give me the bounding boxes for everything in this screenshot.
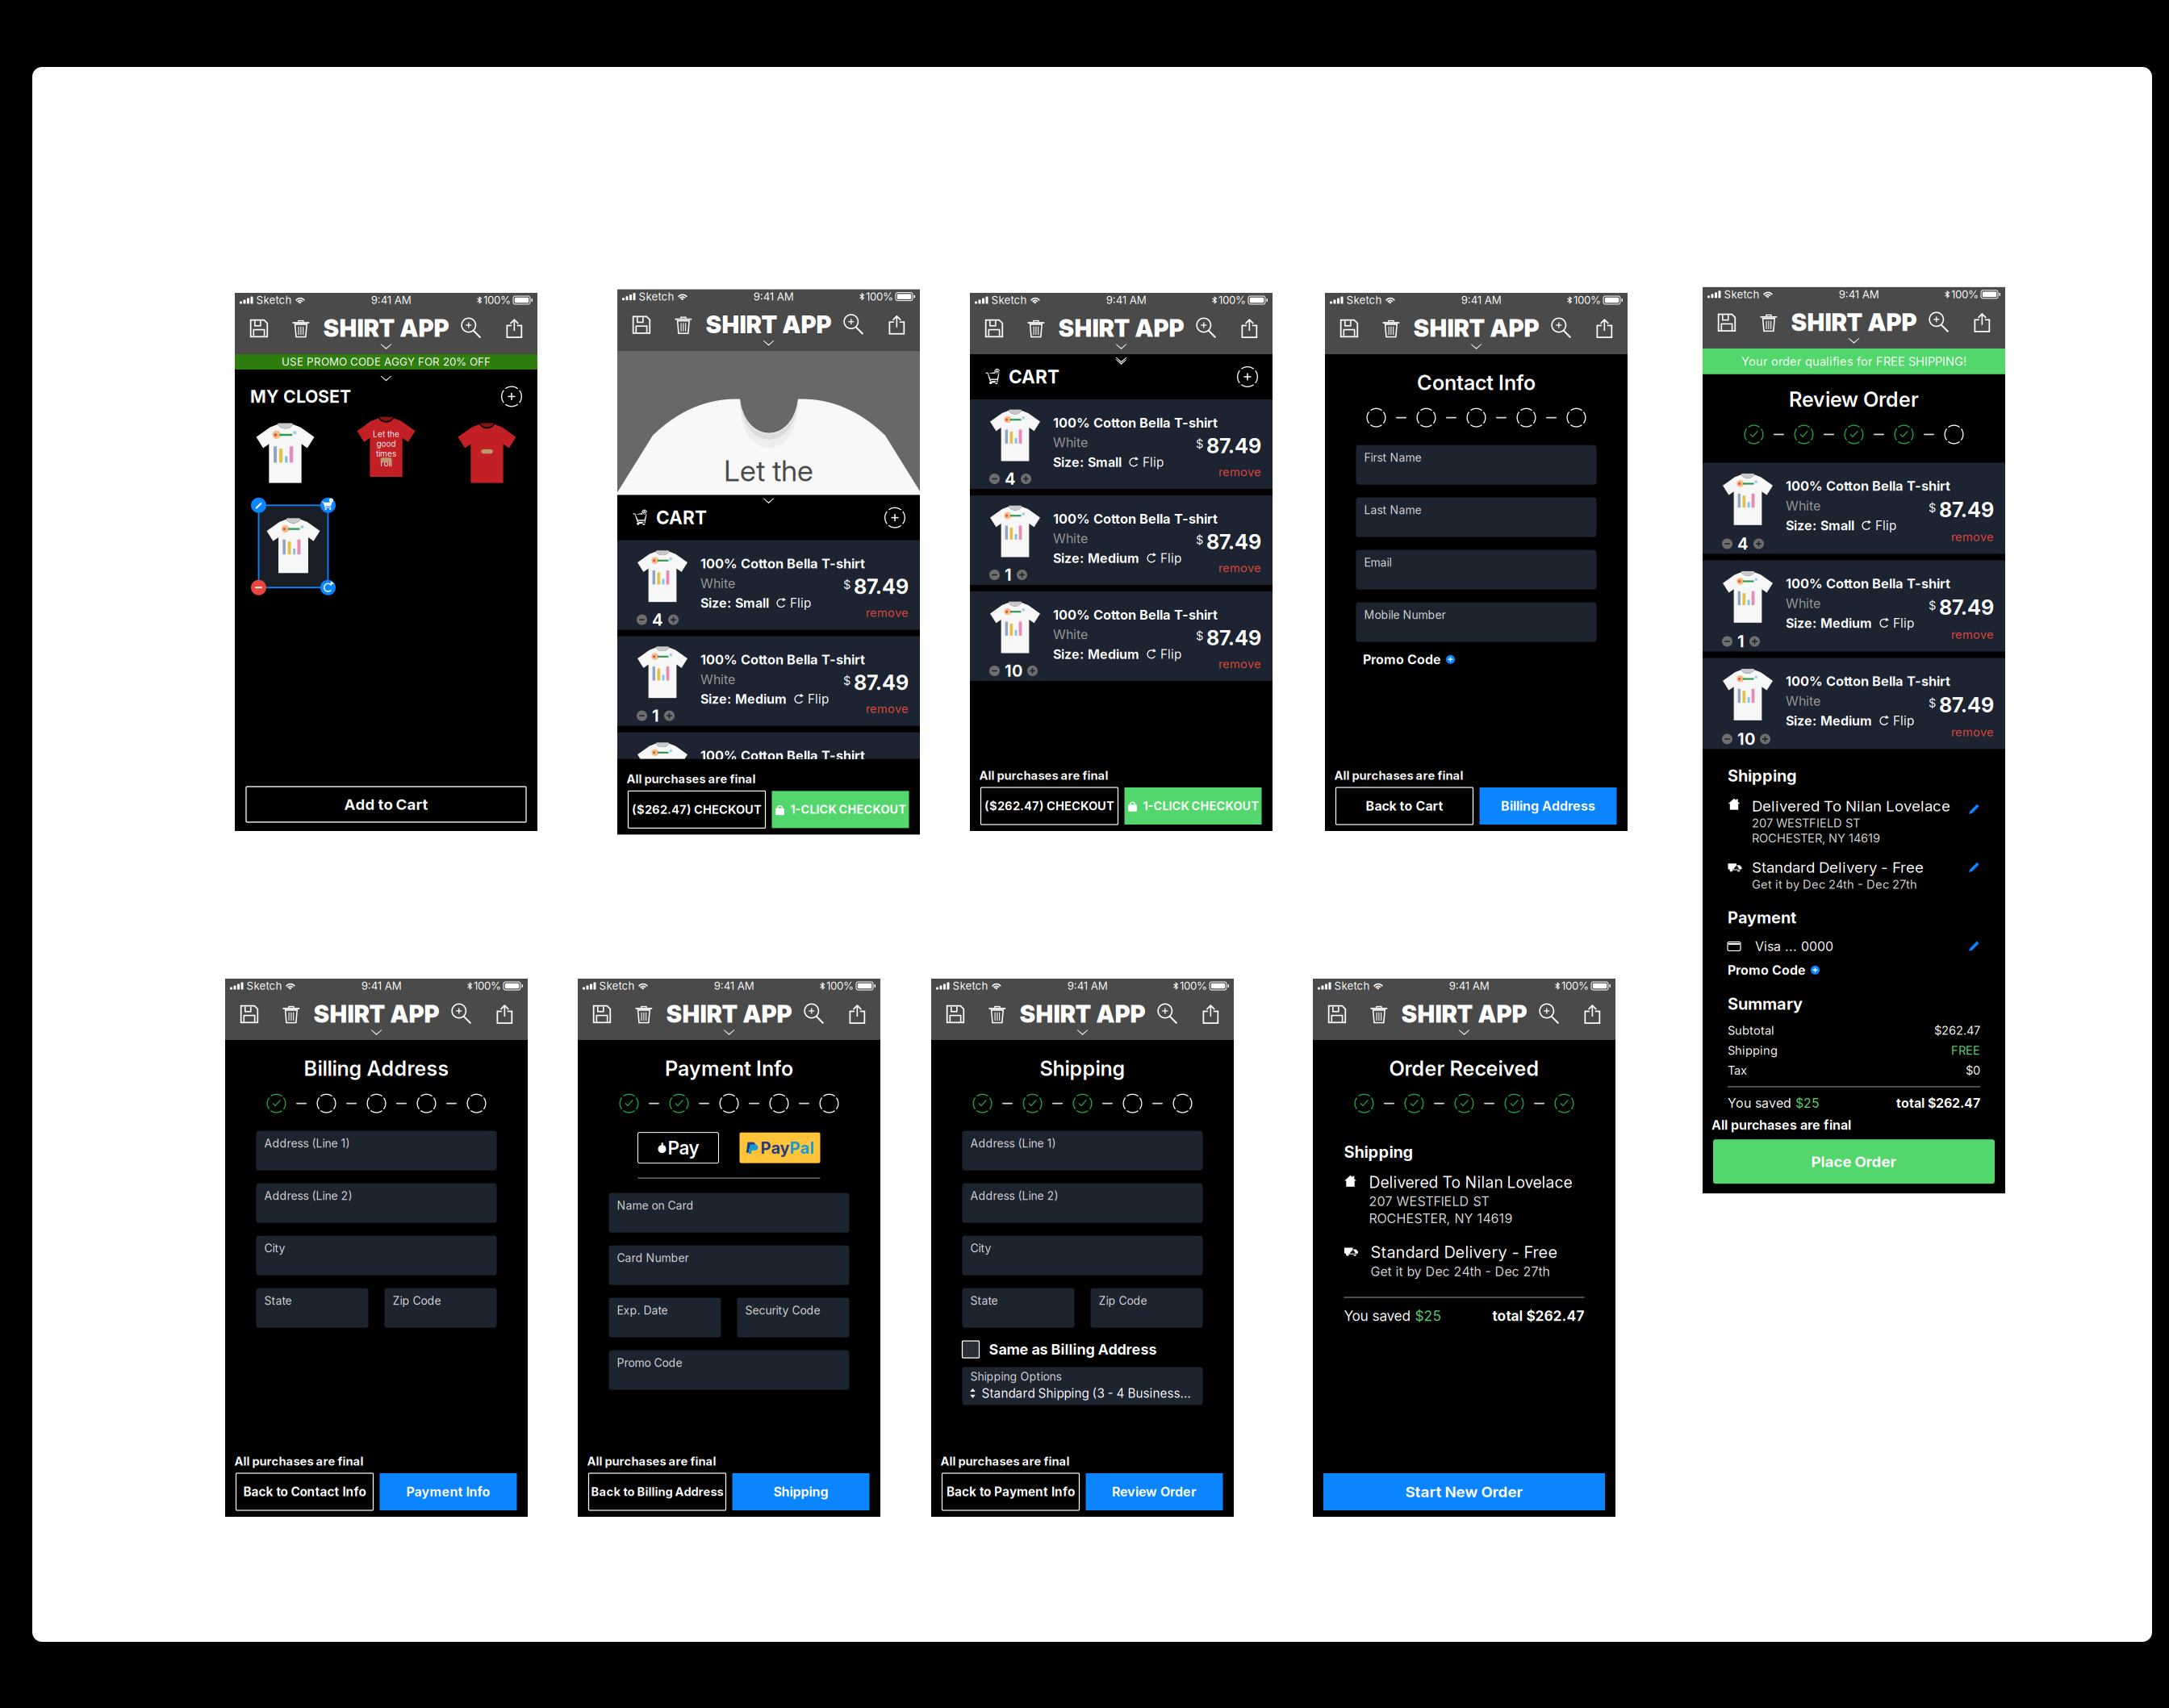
button[interactable]: Delete xyxy=(989,1004,1006,1024)
button[interactable]: Edit address xyxy=(1968,803,1980,815)
button[interactable]: Save xyxy=(1717,313,1736,332)
button[interactable]: 1-CLICK CHECKOUT xyxy=(1124,787,1262,825)
button[interactable]: Back to Billing Address xyxy=(589,1473,726,1510)
button[interactable]: Delete xyxy=(1760,313,1777,332)
button[interactable]: remove xyxy=(866,798,909,812)
button[interactable]: Place Order xyxy=(1713,1139,1995,1184)
button[interactable]: Increase xyxy=(664,710,675,721)
button[interactable]: Increase xyxy=(675,806,685,817)
button[interactable]: Promo Code xyxy=(1363,652,1455,667)
button[interactable]: Start New Order xyxy=(1323,1473,1605,1510)
button[interactable]: Decrease xyxy=(637,710,647,721)
button[interactable]: Share xyxy=(496,1004,513,1024)
button[interactable]: Promo Code xyxy=(1728,962,1820,978)
button[interactable]: Delete xyxy=(283,1004,300,1024)
staticText: Sketch xyxy=(599,979,635,992)
button[interactable]: Delete xyxy=(635,1004,652,1024)
button[interactable]: Share xyxy=(849,1004,866,1024)
button[interactable]: Edit shirt xyxy=(251,498,266,513)
button[interactable]: Back to Payment Info xyxy=(942,1473,1079,1510)
staticText: remove xyxy=(1218,465,1261,479)
button[interactable]: Save xyxy=(1339,319,1359,338)
button[interactable]: Shipping xyxy=(732,1473,869,1510)
button[interactable]: remove xyxy=(1218,561,1261,575)
button[interactable]: Back to Cart xyxy=(1336,787,1473,825)
button[interactable]: Billing Address xyxy=(1479,787,1617,825)
button[interactable]: Share xyxy=(1241,318,1258,339)
button[interactable]: Share xyxy=(1596,318,1613,339)
button[interactable]: Pay xyxy=(638,1133,719,1163)
button[interactable]: Save xyxy=(240,1004,259,1024)
button[interactable]: Decrease xyxy=(1722,636,1732,647)
button[interactable]: Delete xyxy=(1382,319,1400,338)
button[interactable]: Zoom xyxy=(844,315,865,335)
button[interactable]: Increase xyxy=(1021,474,1031,484)
button[interactable]: remove xyxy=(1218,465,1261,479)
button[interactable]: Payment Info xyxy=(380,1473,517,1510)
button[interactable]: Same as Billing Address xyxy=(962,1341,979,1358)
button[interactable]: Decrease xyxy=(989,666,1000,676)
button[interactable]: Decrease xyxy=(1722,734,1732,744)
button[interactable]: Share xyxy=(1584,1004,1601,1024)
button[interactable]: Decrease xyxy=(637,806,647,817)
staticText: Flip xyxy=(1143,455,1164,470)
button[interactable]: Save xyxy=(1327,1004,1347,1024)
button[interactable]: Increase xyxy=(1749,636,1760,647)
button[interactable]: 1-CLICK CHECKOUT xyxy=(772,791,909,828)
button[interactable]: Back to Contact Info xyxy=(236,1473,373,1510)
button[interactable]: Delete xyxy=(292,319,309,338)
button[interactable]: Increase xyxy=(668,614,679,625)
button[interactable]: Zoom xyxy=(452,1004,472,1024)
button[interactable]: Add shirt xyxy=(501,386,522,407)
button[interactable]: Delete shirt xyxy=(251,580,266,595)
button[interactable]: remove xyxy=(1218,657,1261,671)
button[interactable]: Share xyxy=(1202,1004,1219,1024)
button[interactable]: Add item xyxy=(884,507,905,528)
button[interactable]: remove xyxy=(1951,627,1994,642)
button[interactable]: Delete xyxy=(675,315,692,335)
button[interactable]: Increase xyxy=(1027,666,1038,676)
button[interactable]: Save xyxy=(984,319,1004,338)
button[interactable]: Review Order xyxy=(1086,1473,1223,1510)
button[interactable]: Share xyxy=(1973,312,1991,333)
button[interactable]: Save xyxy=(249,319,269,338)
button[interactable]: Edit delivery xyxy=(1968,862,1980,874)
button[interactable]: Share xyxy=(888,315,905,335)
button[interactable]: Decrease xyxy=(989,474,1000,484)
button[interactable]: remove xyxy=(1951,725,1994,739)
button[interactable]: Zoom xyxy=(1197,318,1217,339)
button[interactable]: remove xyxy=(866,702,909,716)
button[interactable]: Delete xyxy=(1370,1004,1387,1024)
button[interactable]: Zoom xyxy=(1158,1004,1178,1024)
button[interactable]: Save xyxy=(946,1004,965,1024)
button[interactable]: ($262.47) CHECKOUT xyxy=(981,787,1118,825)
button[interactable]: Add item xyxy=(1237,366,1258,387)
staticText: $ xyxy=(1929,501,1936,515)
staticText: City xyxy=(264,1241,285,1255)
button[interactable]: Save xyxy=(632,315,651,335)
button[interactable]: Increase xyxy=(1017,570,1027,580)
staticText: Medium xyxy=(1820,713,1872,729)
button[interactable]: Decrease xyxy=(1722,539,1732,549)
button[interactable]: Share xyxy=(506,318,523,339)
button[interactable]: remove xyxy=(1951,530,1994,544)
button[interactable]: Delete xyxy=(1027,319,1045,338)
button[interactable]: Increase xyxy=(1760,734,1770,744)
button[interactable]: Pay xyxy=(740,1133,820,1163)
button[interactable]: Zoom xyxy=(1552,318,1572,339)
button[interactable]: Zoom xyxy=(805,1004,825,1024)
button[interactable]: Add to cart xyxy=(320,498,336,513)
button[interactable]: ($262.47) CHECKOUT xyxy=(628,791,765,828)
button[interactable]: Zoom xyxy=(1540,1004,1560,1024)
button[interactable]: Edit payment xyxy=(1968,940,1980,952)
button[interactable]: Rotate shirt xyxy=(320,580,336,595)
button[interactable]: remove xyxy=(866,606,909,620)
button[interactable]: Zoom xyxy=(462,318,482,339)
button[interactable]: Zoom xyxy=(1929,312,1950,333)
button[interactable]: Decrease xyxy=(637,614,647,625)
button[interactable]: Increase xyxy=(1753,539,1764,549)
button[interactable]: Add to Cart xyxy=(246,787,526,822)
staticText: All purchases are final xyxy=(627,772,756,786)
button[interactable]: Save xyxy=(592,1004,612,1024)
button[interactable]: Decrease xyxy=(989,570,1000,580)
